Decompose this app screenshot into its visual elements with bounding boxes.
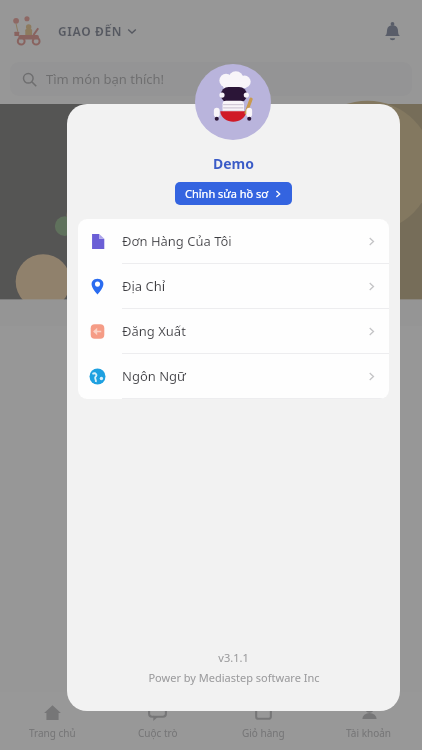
button[interactable]: Trang chủ (0, 692, 105, 750)
staticText: Power by Mediastep software Inc (148, 670, 320, 685)
button[interactable]: Cuộc trò (105, 692, 210, 750)
button[interactable]: Notifications (374, 13, 410, 49)
staticText: Chỉnh sửa hồ sơ (185, 186, 269, 201)
staticText: Tìm món bạn thích! (46, 70, 165, 88)
staticText: Đơn Hàng Của Tôi (122, 232, 232, 250)
button[interactable]: Delivery (6, 9, 50, 53)
button[interactable]: Giỏ hàng (210, 692, 316, 750)
staticText: Cuộc trò (138, 726, 178, 740)
staticText: Giỏ hàng (242, 726, 285, 740)
button[interactable]: GIAO ĐẾN (58, 23, 137, 39)
staticText: v3.1.1 (218, 650, 249, 665)
staticText: Tài khoản (346, 726, 392, 740)
button[interactable]: Tìm món bạn thích! (10, 62, 412, 96)
button[interactable]: Đơn Hàng Của Tôi (78, 219, 389, 264)
button[interactable]: Ngôn Ngữ (78, 354, 389, 399)
button[interactable]: Chỉnh sửa hồ sơ (175, 182, 292, 205)
staticText: Đăng Xuất (122, 322, 186, 340)
button[interactable]: Tài khoản (316, 692, 422, 750)
button[interactable]: Địa Chỉ (78, 264, 389, 309)
staticText: Trang chủ (29, 726, 76, 740)
staticText: Ngôn Ngữ (122, 367, 186, 385)
button[interactable]: Đăng Xuất (78, 309, 389, 354)
staticText: Địa Chỉ (122, 277, 166, 295)
button[interactable]: Profile avatar (195, 64, 271, 140)
button[interactable] (204, 104, 422, 326)
button[interactable] (0, 104, 196, 326)
staticText: GIAO ĐẾN (58, 23, 123, 39)
staticText: Demo (213, 154, 255, 173)
